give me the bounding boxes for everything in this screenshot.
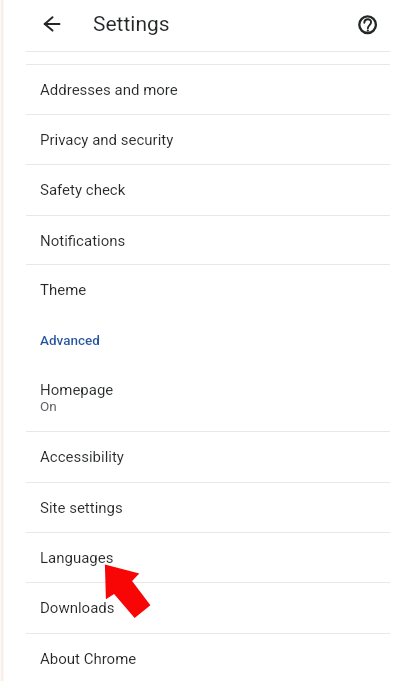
button[interactable]: Theme	[0, 264, 400, 314]
button[interactable]: Safety check	[0, 164, 400, 215]
staticText: Languages	[40, 549, 114, 567]
staticText: Site settings	[40, 499, 123, 517]
button[interactable]: Addresses and more	[0, 64, 400, 115]
staticText: Homepage	[40, 381, 114, 399]
button[interactable]: About Chrome	[0, 633, 400, 681]
staticText: Settings	[93, 12, 170, 37]
staticText: Addresses and more	[40, 81, 178, 99]
button[interactable]: Languages	[0, 532, 400, 583]
staticText: Advanced	[40, 332, 100, 348]
staticText: Privacy and security	[40, 131, 174, 149]
staticText: Accessibility	[40, 448, 124, 466]
staticText: About Chrome	[40, 650, 137, 668]
button[interactable]: Homepage	[0, 375, 400, 431]
staticText: On	[40, 398, 57, 414]
staticText: Notifications	[40, 232, 126, 250]
button[interactable]: Accessibility	[0, 431, 400, 482]
staticText: Safety check	[40, 181, 126, 199]
button[interactable]: Downloads	[0, 582, 400, 632]
button[interactable]: Back	[38, 10, 67, 39]
staticText: Downloads	[40, 599, 115, 617]
button[interactable]: Notifications	[0, 215, 400, 265]
button[interactable]: Help	[353, 10, 383, 40]
staticText: Theme	[40, 281, 87, 299]
button[interactable]: Privacy and security	[0, 114, 400, 164]
button[interactable]: Site settings	[0, 482, 400, 532]
button[interactable]: Advanced	[0, 317, 400, 361]
